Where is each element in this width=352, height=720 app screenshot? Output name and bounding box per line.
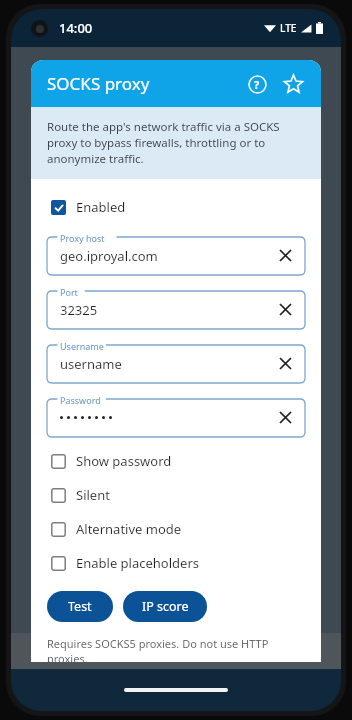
button[interactable]: Clear Username (271, 349, 299, 377)
button[interactable]: Clear Port (271, 295, 299, 323)
staticText: ? (254, 77, 260, 92)
button[interactable]: Clear Proxy host (271, 241, 299, 269)
staticText: IP score (142, 598, 189, 615)
button[interactable]: Clear Password (271, 403, 299, 431)
button[interactable]: Favorite (275, 66, 311, 102)
staticText: Test (68, 598, 92, 615)
staticText: Password (60, 394, 101, 406)
staticText: MITM proxies but the app checks for (83, 644, 272, 659)
staticText: Alternative mode (76, 520, 182, 538)
staticText: LTE (280, 21, 297, 35)
staticText: SOCKS proxy (47, 72, 150, 95)
staticText: Enabled (76, 198, 126, 216)
button[interactable]: Show password (47, 447, 305, 475)
staticText: Show password (76, 452, 172, 470)
staticText: Enable placeholders (76, 554, 200, 572)
button[interactable]: Enabled (47, 193, 305, 221)
staticText: geo.iproyal.com (60, 247, 158, 265)
staticText: 32325 (60, 301, 98, 319)
button[interactable]: Help (239, 66, 275, 102)
staticText: Silent (76, 486, 110, 504)
staticText: Route the app's network traffic via a SO… (47, 119, 305, 167)
staticText: Proxy host (60, 232, 105, 244)
staticText: username (60, 355, 122, 373)
button[interactable]: Silent (47, 481, 305, 509)
staticText: Requires SOCKS5 proxies. Do not use HTTP… (47, 636, 305, 662)
staticText: Port (60, 286, 78, 298)
button[interactable]: Test (47, 591, 113, 622)
staticText: Username (60, 340, 104, 352)
button[interactable]: Enable placeholders (47, 549, 305, 577)
button[interactable]: Alternative mode (47, 515, 305, 543)
button[interactable]: IP score (123, 591, 207, 622)
staticText: 14:00 (59, 19, 93, 37)
